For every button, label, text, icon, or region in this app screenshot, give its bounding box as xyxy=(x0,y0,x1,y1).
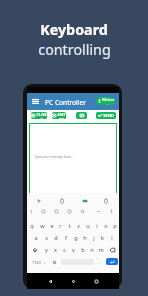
staticText: i xyxy=(96,222,98,230)
staticText: o xyxy=(104,222,108,230)
staticText: x xyxy=(54,246,57,254)
button[interactable]: icon6 xyxy=(108,208,115,215)
staticText: ENTER xyxy=(57,112,66,119)
staticText: Keyboard xyxy=(40,20,108,39)
button[interactable]: n xyxy=(87,244,96,256)
button[interactable]: icon0 xyxy=(28,208,35,215)
button[interactable]: w xyxy=(37,220,47,232)
staticText: h xyxy=(83,234,87,242)
staticText: t xyxy=(68,222,71,230)
button[interactable]: e xyxy=(47,220,56,232)
button[interactable]: Emoji xyxy=(50,256,58,268)
staticText: c xyxy=(63,246,66,254)
staticText: , xyxy=(44,259,46,266)
button[interactable]: Misterio xyxy=(96,97,115,105)
button[interactable]: CLOSE xyxy=(31,112,47,119)
button[interactable]: , xyxy=(41,256,49,268)
button[interactable]: f xyxy=(61,232,71,244)
button[interactable]: Back xyxy=(46,277,54,285)
staticText: e xyxy=(50,222,54,230)
staticText: controlling xyxy=(38,40,111,59)
button[interactable]: h xyxy=(80,232,89,244)
staticText: PC Controller xyxy=(45,98,86,107)
button[interactable]: icon4 xyxy=(79,208,86,215)
staticText: . xyxy=(98,259,100,266)
button[interactable]: b xyxy=(78,244,87,256)
staticText: z xyxy=(77,222,80,230)
staticText: s xyxy=(45,234,48,242)
button[interactable]: Recents xyxy=(92,277,100,285)
staticText: Type your message here... xyxy=(34,155,74,159)
button[interactable]: o xyxy=(101,220,110,232)
button[interactable]: d xyxy=(51,232,61,244)
button[interactable]: tool0 xyxy=(35,197,43,205)
button[interactable]: k xyxy=(98,232,107,244)
button[interactable] xyxy=(76,112,87,119)
staticText: j xyxy=(93,234,95,242)
button[interactable]: z xyxy=(74,220,83,232)
button[interactable]: r xyxy=(56,220,65,232)
button[interactable]: q xyxy=(27,220,37,232)
staticText: g xyxy=(74,234,78,242)
staticText: m xyxy=(98,246,104,254)
button[interactable]: j xyxy=(89,232,98,244)
staticText: f xyxy=(65,234,67,242)
button[interactable]: tool1 xyxy=(58,197,66,205)
button[interactable]: ENTER xyxy=(52,112,66,119)
button[interactable]: Backspace xyxy=(105,244,119,256)
button[interactable]: a xyxy=(31,232,41,244)
button[interactable]: Home xyxy=(69,277,77,285)
button[interactable]: s xyxy=(41,232,51,244)
button[interactable]: v xyxy=(69,244,78,256)
staticText: SEND xyxy=(103,113,114,118)
button[interactable]: icon3 xyxy=(66,208,73,215)
staticText: b xyxy=(81,246,85,254)
staticText: Misterio xyxy=(102,97,115,105)
button[interactable]: u xyxy=(83,220,92,232)
button[interactable]: SEND xyxy=(96,112,116,119)
button[interactable]: icon1 xyxy=(40,208,47,215)
button[interactable]: p xyxy=(110,220,119,232)
button[interactable]: Type your message here... xyxy=(30,124,116,193)
button[interactable]: Enter xyxy=(106,258,118,265)
staticText: ?123 xyxy=(32,260,41,265)
staticText: y xyxy=(45,246,48,254)
button[interactable]: c xyxy=(60,244,69,256)
button[interactable]: Menu xyxy=(32,99,39,104)
button[interactable]: . xyxy=(95,256,103,268)
button[interactable]: i xyxy=(92,220,101,232)
staticText: l xyxy=(111,234,113,242)
staticText: r xyxy=(59,222,62,230)
button[interactable]: t xyxy=(65,220,74,232)
button[interactable]: g xyxy=(71,232,80,244)
staticText: CLOSE xyxy=(36,112,47,119)
button[interactable]: y xyxy=(42,244,51,256)
staticText: k xyxy=(101,234,104,242)
button[interactable]: tool3 xyxy=(102,197,110,205)
button[interactable]: icon2 xyxy=(53,208,60,215)
button[interactable]: m xyxy=(96,244,105,256)
button[interactable]: x xyxy=(51,244,60,256)
staticText: a xyxy=(34,234,38,242)
staticText: n xyxy=(90,246,94,254)
button[interactable]: l xyxy=(107,232,116,244)
button[interactable]: ?123 xyxy=(30,256,43,268)
staticText: v xyxy=(72,246,75,254)
staticText: w xyxy=(40,222,45,230)
staticText: d xyxy=(54,234,58,242)
staticText: p xyxy=(113,222,117,230)
button[interactable]: tool2 xyxy=(81,197,89,205)
button[interactable]: icon5 xyxy=(95,208,102,215)
staticText: u xyxy=(86,222,90,230)
button[interactable]: Shift xyxy=(27,244,42,256)
staticText: q xyxy=(30,222,34,230)
